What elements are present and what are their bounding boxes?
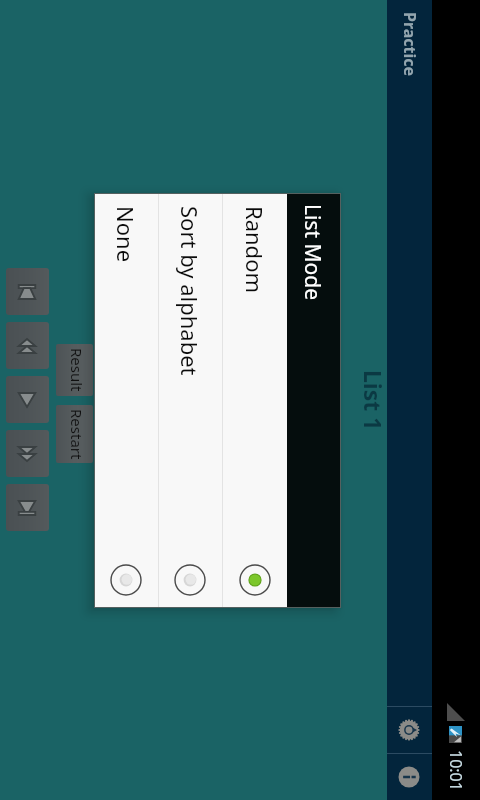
button[interactable]: Previous	[6, 322, 49, 369]
button[interactable]: Random	[223, 194, 287, 607]
staticText: Result	[67, 348, 87, 392]
button[interactable]: More options	[387, 754, 432, 800]
button[interactable]: Skip to first	[6, 268, 49, 315]
staticText: List Mode	[298, 204, 327, 301]
button[interactable]: Sort by alphabet	[159, 194, 222, 607]
button[interactable]: Restart	[56, 405, 93, 463]
staticText: Restart	[67, 409, 87, 460]
button[interactable]: Skip to last	[6, 484, 49, 531]
staticText: None	[111, 206, 141, 263]
button[interactable]: Result	[56, 344, 93, 396]
staticText: List 1	[358, 370, 389, 431]
button[interactable]: Settings	[387, 707, 432, 753]
staticText: Sort by alphabet	[175, 206, 205, 376]
staticText: 10:01	[445, 750, 467, 791]
button[interactable]: Play	[6, 376, 49, 423]
staticText: Practice	[399, 12, 421, 77]
button[interactable]: Next	[6, 430, 49, 477]
button[interactable]: None	[95, 194, 158, 607]
staticText: Random	[240, 206, 270, 294]
